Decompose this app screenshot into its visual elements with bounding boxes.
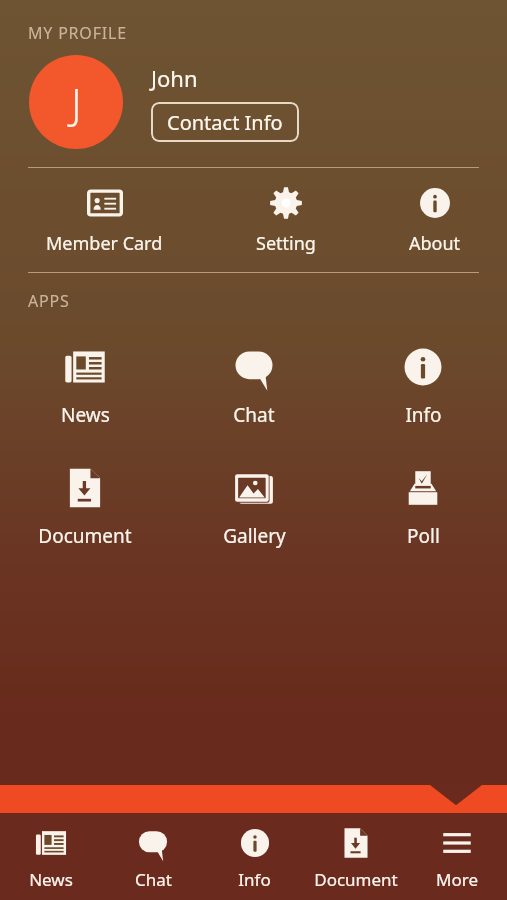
staticText: Chat [135,868,172,891]
staticText: About [409,231,461,256]
staticText: Document [38,523,132,549]
button[interactable]: Chat [184,344,324,430]
button[interactable]: More [406,813,507,900]
staticText: Document [314,868,398,891]
staticText: News [29,868,73,891]
staticText: Contact Info [167,109,283,136]
button[interactable]: Chat [102,813,204,900]
button[interactable]: Info [353,344,493,430]
button[interactable]: About [397,184,473,258]
button[interactable]: News [0,813,102,900]
button[interactable]: Gallery [184,465,324,551]
button[interactable]: Member Card [34,184,175,258]
staticText: MY PROFILE [28,22,127,44]
staticText: J [71,74,82,131]
button[interactable]: Document [305,813,406,900]
button[interactable]: J [29,55,123,149]
staticText: Info [238,868,271,891]
staticText: Setting [256,231,316,256]
staticText: Member Card [46,231,163,256]
button[interactable]: Info [204,813,305,900]
button[interactable]: News [15,344,155,430]
button[interactable]: Setting [244,184,328,258]
staticText: John [151,63,198,93]
staticText: APPS [28,290,70,312]
button[interactable]: Document [15,465,155,551]
staticText: Info [405,402,442,428]
staticText: Poll [407,523,440,549]
staticText: More [436,868,478,891]
staticText: Gallery [223,523,286,549]
staticText: News [61,402,110,428]
button[interactable]: Poll [353,465,493,551]
staticText: Chat [233,402,275,428]
button[interactable]: Contact Info [151,102,299,142]
